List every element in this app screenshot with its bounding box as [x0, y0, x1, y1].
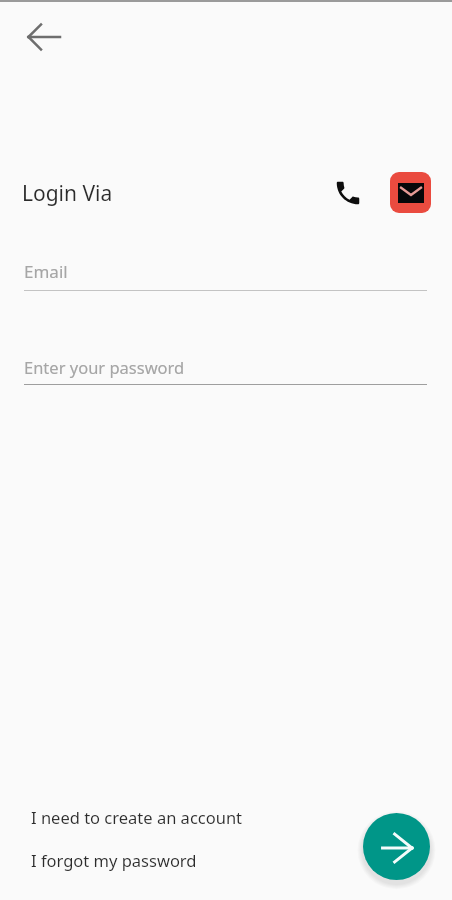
staticText: Enter your password — [24, 356, 185, 378]
button[interactable]: Email — [24, 252, 427, 291]
staticText: I need to create an account — [31, 806, 243, 828]
button[interactable]: Back — [19, 12, 68, 61]
button[interactable]: Login with phone — [326, 171, 370, 215]
button[interactable]: Login with email — [390, 172, 431, 213]
button[interactable]: Continue — [363, 813, 430, 880]
button[interactable]: Login Via — [22, 179, 113, 208]
button[interactable]: I need to create an account — [31, 806, 243, 828]
button[interactable]: I forgot my password — [31, 849, 197, 871]
staticText: I forgot my password — [31, 849, 197, 871]
staticText: Login Via — [22, 179, 113, 208]
button[interactable]: Enter your password — [24, 348, 427, 385]
staticText: Email — [24, 260, 68, 283]
